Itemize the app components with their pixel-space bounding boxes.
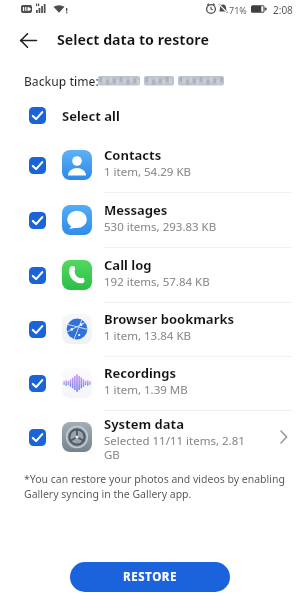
- button[interactable]: Call log: [0, 248, 300, 303]
- button[interactable]: RESTORE: [70, 562, 230, 592]
- button[interactable]: Browser bookmarks: [0, 302, 300, 357]
- staticText: Backup time:: [24, 73, 99, 89]
- staticText: 2:08: [273, 3, 293, 17]
- staticText: 1 item, 1.39 MB: [104, 382, 188, 398]
- staticText: System data: [104, 415, 185, 433]
- button[interactable]: Recordings: [0, 356, 300, 411]
- staticText: 1 item, 54.29 KB: [104, 164, 191, 180]
- staticText: Messages: [104, 201, 168, 219]
- button[interactable]: Select all: [0, 98, 300, 134]
- staticText: 1 item, 13.84 KB: [104, 328, 191, 344]
- staticText: RESTORE: [123, 569, 178, 585]
- button[interactable]: [29, 107, 46, 124]
- staticText: 530 items, 293.83 KB: [104, 219, 217, 235]
- button[interactable]: [29, 157, 46, 174]
- staticText: *You can restore your photos and videos …: [24, 472, 285, 486]
- button[interactable]: [29, 375, 46, 392]
- button[interactable]: System data: [0, 410, 300, 474]
- staticText: GB: [104, 447, 120, 463]
- button[interactable]: [29, 321, 46, 338]
- staticText: Select data to restore: [57, 30, 209, 49]
- button[interactable]: [8, 20, 48, 60]
- staticText: 71%: [229, 4, 247, 16]
- staticText: Gallery syncing in the Gallery app.: [24, 487, 192, 501]
- button[interactable]: Messages: [0, 193, 300, 248]
- button[interactable]: [29, 267, 46, 284]
- staticText: Selected 11/11 items, 2.81: [104, 433, 245, 449]
- button[interactable]: [29, 429, 46, 446]
- staticText: Call log: [104, 256, 152, 274]
- staticText: Contacts: [104, 146, 162, 164]
- staticText: 192 items, 57.84 KB: [104, 274, 210, 290]
- staticText: Select all: [62, 107, 120, 125]
- button[interactable]: [29, 212, 46, 229]
- staticText: Browser bookmarks: [104, 310, 235, 328]
- staticText: Recordings: [104, 364, 176, 382]
- button[interactable]: Contacts: [0, 138, 300, 193]
